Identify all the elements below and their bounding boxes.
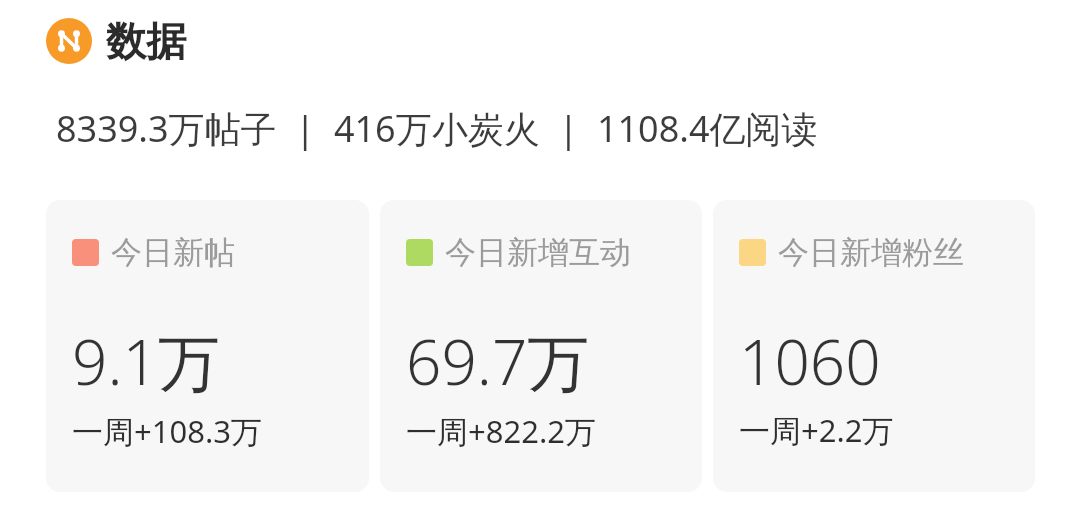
staticText: 一周+2.2万 bbox=[739, 409, 894, 451]
button[interactable]: 数据 brand icon bbox=[46, 16, 1079, 66]
button[interactable]: 今日新增互动 bbox=[380, 200, 702, 492]
staticText: 今日新增粉丝 bbox=[778, 233, 964, 272]
button[interactable]: 今日新增粉丝 bbox=[713, 200, 1035, 492]
staticText: 今日新增互动 bbox=[445, 233, 631, 272]
staticText: 数据 bbox=[106, 16, 186, 66]
button[interactable]: 数据 brand icon bbox=[46, 18, 92, 64]
staticText: 8339.3万帖子 | 416万小炭火 | 1108.4亿阅读 bbox=[56, 104, 818, 153]
button[interactable]: 今日新帖 bbox=[46, 200, 369, 492]
staticText: 9.1万 bbox=[72, 319, 220, 404]
staticText: 今日新帖 bbox=[111, 233, 235, 272]
staticText: 69.7万 bbox=[406, 319, 590, 404]
staticText: 一周+822.2万 bbox=[406, 410, 596, 452]
staticText: 1060 bbox=[739, 319, 881, 403]
staticText: 一周+108.3万 bbox=[72, 410, 262, 452]
